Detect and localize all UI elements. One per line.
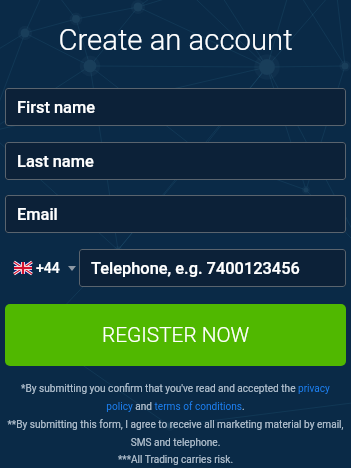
staticText: **By submitting this form, I agree to re… [0,419,351,431]
staticText: First name [17,98,96,117]
button[interactable]: REGISTER NOW [5,304,346,366]
staticText: policy and terms of conditions. [0,401,351,413]
button[interactable]: Last name [5,142,346,180]
button[interactable]: First name [5,88,346,126]
button[interactable]: Email [5,195,346,233]
staticText: Create an account [0,23,351,57]
staticText: Telephone, e.g. 7400123456 [91,259,300,278]
staticText: REGISTER NOW [102,323,250,347]
staticText: *By submitting you confirm that you've r… [0,383,351,395]
staticText: Last name [17,152,94,171]
staticText: SMS and telephone. [0,437,351,449]
button[interactable]: Telephone, e.g. 7400123456 [79,249,346,287]
staticText: Email [17,205,58,224]
button[interactable]: Select country calling code [5,249,79,287]
staticText: +44 [36,260,60,276]
staticText: ***All Trading carries risk. [0,454,351,466]
